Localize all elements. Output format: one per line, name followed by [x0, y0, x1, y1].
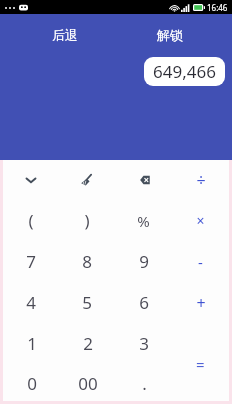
button[interactable]: 1: [3, 323, 60, 363]
staticText: 16:46: [207, 2, 228, 13]
staticText: .: [142, 372, 147, 395]
staticText: 6: [139, 291, 149, 314]
button[interactable]: %: [115, 200, 172, 241]
button[interactable]: 6: [115, 282, 172, 323]
staticText: 8: [82, 250, 92, 273]
staticText: 7: [26, 250, 36, 273]
button[interactable]: 4: [3, 282, 59, 323]
staticText: 5: [82, 291, 92, 314]
staticText: ÷: [196, 169, 206, 191]
staticText: +: [196, 292, 206, 314]
staticText: =: [196, 354, 205, 374]
staticText: (: [28, 209, 34, 232]
button[interactable]: Clear all: [59, 160, 115, 200]
staticText: ×: [196, 211, 205, 230]
button[interactable]: 3: [116, 323, 172, 363]
staticText: ): [84, 209, 90, 232]
button[interactable]: .: [116, 363, 172, 404]
button[interactable]: Backspace: [115, 160, 172, 200]
staticText: 0: [27, 372, 37, 395]
staticText: 3: [139, 332, 149, 355]
button[interactable]: 649,466: [144, 57, 225, 86]
staticText: -: [198, 252, 203, 272]
staticText: 9: [139, 250, 149, 273]
button[interactable]: (: [3, 200, 59, 241]
button[interactable]: 0: [3, 363, 60, 404]
button[interactable]: +: [172, 282, 229, 323]
button[interactable]: 9: [115, 241, 172, 282]
staticText: 649,466: [153, 60, 216, 83]
staticText: 2: [83, 332, 93, 355]
button[interactable]: 5: [59, 282, 115, 323]
button[interactable]: 后退: [48, 23, 82, 47]
button[interactable]: 8: [59, 241, 115, 282]
staticText: 1: [27, 332, 37, 355]
button[interactable]: ÷: [172, 160, 229, 200]
button[interactable]: -: [172, 241, 229, 282]
staticText: 4: [26, 291, 36, 314]
button[interactable]: ): [59, 200, 115, 241]
staticText: %: [137, 211, 150, 231]
button[interactable]: 00: [60, 363, 116, 404]
button[interactable]: 解锁: [153, 23, 187, 47]
button[interactable]: Collapse keypad: [3, 160, 59, 200]
button[interactable]: =: [172, 323, 229, 404]
button[interactable]: 2: [60, 323, 116, 363]
button[interactable]: ×: [172, 200, 229, 241]
staticText: 00: [78, 372, 98, 395]
button[interactable]: 7: [3, 241, 59, 282]
